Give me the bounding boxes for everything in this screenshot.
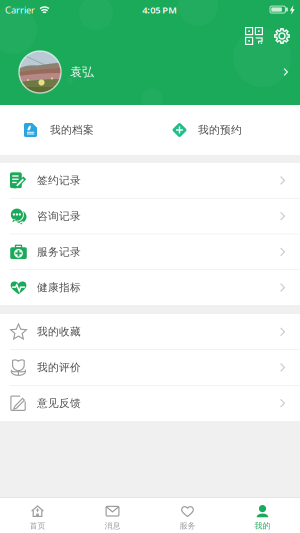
staticText: Carrier (5, 4, 35, 16)
button[interactable]: Settings (271, 25, 293, 47)
staticText: 签约记录 (37, 174, 81, 187)
button[interactable]: 咨询记录 (0, 199, 300, 234)
button[interactable]: 我的档案 (0, 105, 150, 155)
button[interactable]: Scan QR code (242, 24, 266, 48)
button[interactable]: 首页 (0, 498, 75, 533)
button[interactable]: 我的预约 (150, 105, 300, 155)
button[interactable]: 服务记录 (0, 234, 300, 269)
staticText: 消息 (104, 521, 120, 531)
button[interactable]: 消息 (75, 498, 150, 533)
staticText: 我的档案 (50, 123, 94, 136)
staticText: 首页 (29, 521, 45, 531)
staticText: 服务 (179, 521, 195, 531)
button[interactable]: 我的评价 (0, 350, 300, 385)
staticText: 我的 (254, 521, 270, 531)
button[interactable]: 服务 (150, 498, 225, 533)
button[interactable]: 我的 (225, 498, 300, 533)
staticText: 咨询记录 (37, 210, 81, 223)
staticText: 4:05 PM (142, 4, 177, 16)
staticText: 我的预约 (198, 123, 242, 136)
button[interactable]: 意见反馈 (0, 386, 300, 421)
staticText: 我的评价 (37, 361, 81, 374)
button[interactable]: 我的收藏 (0, 314, 300, 349)
button[interactable]: 签约记录 (0, 163, 300, 198)
staticText: 服务记录 (37, 245, 81, 258)
button[interactable]: 健康指标 (0, 270, 300, 305)
staticText: 意见反馈 (37, 397, 81, 410)
button[interactable]: 袁弘 (0, 48, 300, 105)
staticText: 健康指标 (37, 281, 81, 294)
staticText: 袁弘 (70, 65, 94, 79)
staticText: 我的收藏 (37, 325, 81, 338)
